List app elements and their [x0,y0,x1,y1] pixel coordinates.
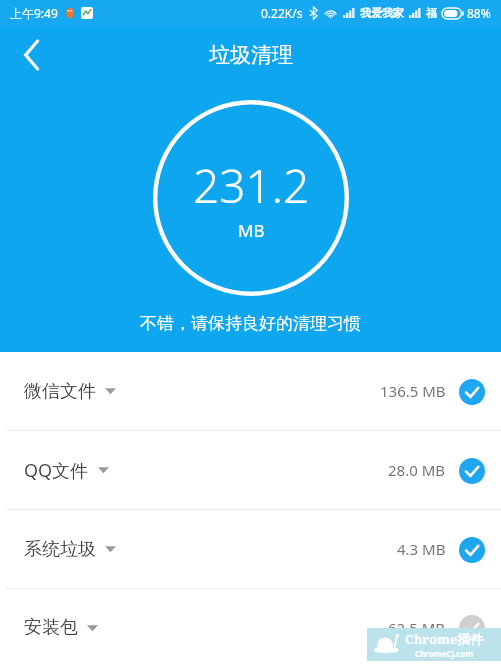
staticText: MB [238,219,265,242]
button[interactable]: 选择 系统垃圾 [458,536,485,563]
staticText: 231.2 [193,154,310,217]
staticText: 4.3 MB [397,539,446,559]
staticText: 88% [467,5,491,21]
button[interactable]: 选择 QQ文件 [458,457,485,484]
staticText: 我爱我家 [360,6,404,20]
staticText: 62.5 MB [388,618,446,638]
staticText: 28.0 MB [388,460,446,480]
staticText: 系统垃圾 [24,538,96,561]
staticText: ChromeCJ.com [415,648,474,659]
button[interactable]: 选择 微信文件 [458,378,485,405]
staticText: 不错，请保持良好的清理习惯 [140,313,361,334]
button[interactable]: 微信文件 [0,352,501,430]
staticText: 微信文件 [24,380,96,403]
button[interactable]: 系统垃圾 [0,510,501,588]
staticText: 安装包 [24,616,78,639]
staticText: 136.5 MB [380,381,446,401]
button[interactable]: 返回 [8,31,56,79]
button[interactable]: 选择 安装包 [458,614,485,641]
staticText: 福 [426,6,437,20]
staticText: 垃圾清理 [209,42,293,68]
staticText: 0.22K/s [261,5,303,21]
staticText: QQ文件 [24,458,89,483]
staticText: 上午9:49 [10,5,58,21]
button[interactable]: QQ文件 [0,431,501,509]
button[interactable]: 安装包 [0,589,501,666]
staticText: Chrome插件 [405,630,484,648]
